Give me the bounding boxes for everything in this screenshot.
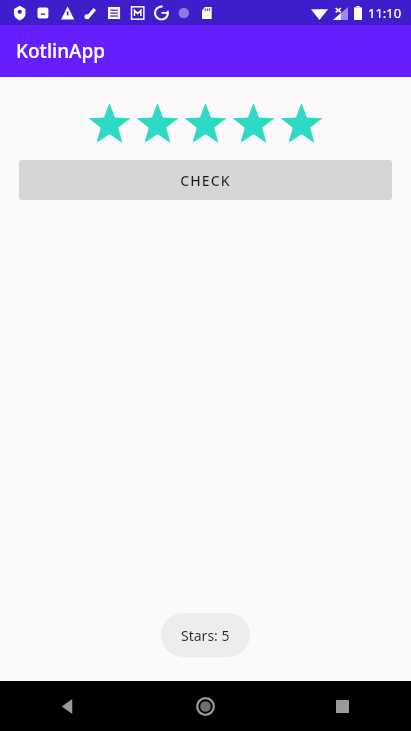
button[interactable]: Rating: 5 stars <box>0 99 411 151</box>
staticText: 11:10 <box>368 4 402 22</box>
staticText: KotlinApp <box>16 38 106 64</box>
staticText: CHECK <box>180 171 231 190</box>
button[interactable]: Home <box>137 681 274 731</box>
button[interactable]: CHECK <box>19 160 392 200</box>
button[interactable]: Recent apps <box>274 681 411 731</box>
button[interactable]: Stars: 5 <box>181 613 230 657</box>
staticText: Stars: 5 <box>181 626 230 645</box>
button[interactable]: Back <box>0 681 137 731</box>
